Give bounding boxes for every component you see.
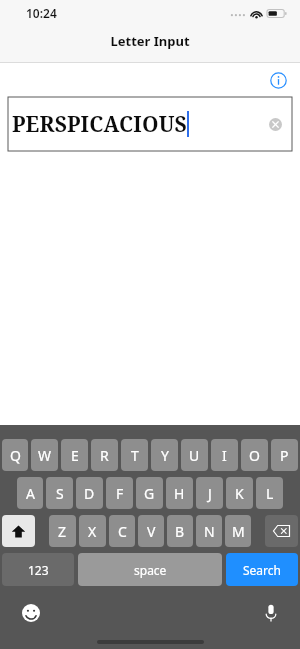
button[interactable]: PERSPICACIOUS [8, 97, 292, 151]
staticText: Y [161, 446, 169, 465]
button[interactable]: N [196, 515, 222, 547]
button[interactable]: Backspace [265, 515, 298, 547]
button[interactable]: Shift [2, 515, 35, 547]
staticText: 123 [28, 562, 49, 578]
staticText: G [144, 484, 155, 503]
button[interactable]: L [256, 477, 283, 509]
button[interactable]: G [136, 477, 163, 509]
button[interactable]: 123 [2, 553, 74, 586]
button[interactable]: X [79, 515, 106, 547]
button[interactable]: Y [151, 439, 178, 471]
button[interactable]: U [181, 439, 208, 471]
button[interactable]: C [109, 515, 135, 547]
button[interactable]: Information [265, 67, 291, 93]
staticText: N [204, 522, 215, 541]
staticText: O [249, 446, 260, 465]
staticText: Letter Input [110, 32, 190, 50]
staticText: E [71, 446, 79, 465]
staticText: PERSPICACIOUS [12, 110, 187, 139]
button[interactable]: P [271, 439, 298, 471]
staticText: F [116, 484, 124, 503]
button[interactable]: B [167, 515, 193, 547]
button[interactable]: M [225, 515, 251, 547]
button[interactable]: T [121, 439, 148, 471]
button[interactable]: space [78, 553, 222, 586]
button[interactable]: Search [226, 553, 298, 586]
staticText: V [147, 522, 156, 541]
button[interactable]: W [31, 439, 58, 471]
button[interactable]: A [17, 477, 43, 509]
button[interactable]: V [138, 515, 164, 547]
staticText: L [266, 484, 274, 503]
staticText: S [56, 484, 64, 503]
button[interactable]: S [46, 477, 73, 509]
staticText: C [118, 522, 127, 541]
staticText: Q [10, 446, 21, 465]
staticText: I [222, 446, 227, 465]
staticText: P [280, 446, 289, 465]
staticText: M [232, 522, 245, 541]
staticText: H [174, 484, 185, 503]
staticText: X [88, 522, 97, 541]
staticText: T [131, 446, 139, 465]
button[interactable]: I [211, 439, 238, 471]
button[interactable]: Emoji [18, 600, 44, 626]
button[interactable]: H [166, 477, 193, 509]
button[interactable]: Z [49, 515, 76, 547]
button[interactable]: Voice input [258, 600, 284, 626]
button[interactable]: D [76, 477, 103, 509]
button[interactable]: J [196, 477, 223, 509]
staticText: U [189, 446, 200, 465]
button[interactable]: Q [2, 439, 28, 471]
staticText: Search [243, 562, 281, 578]
button[interactable]: E [61, 439, 88, 471]
button[interactable]: F [106, 477, 133, 509]
staticText: W [38, 446, 52, 465]
button[interactable]: Clear text [264, 113, 286, 135]
button[interactable]: R [91, 439, 118, 471]
staticText: 10:24 [26, 5, 57, 21]
staticText: B [175, 522, 185, 541]
staticText: K [235, 484, 244, 503]
button[interactable]: K [226, 477, 253, 509]
button[interactable]: O [241, 439, 268, 471]
staticText: J [208, 484, 212, 503]
staticText: D [84, 484, 95, 503]
staticText: space [134, 562, 167, 578]
staticText: R [100, 446, 109, 465]
staticText: Z [58, 522, 67, 541]
staticText: A [26, 484, 35, 503]
